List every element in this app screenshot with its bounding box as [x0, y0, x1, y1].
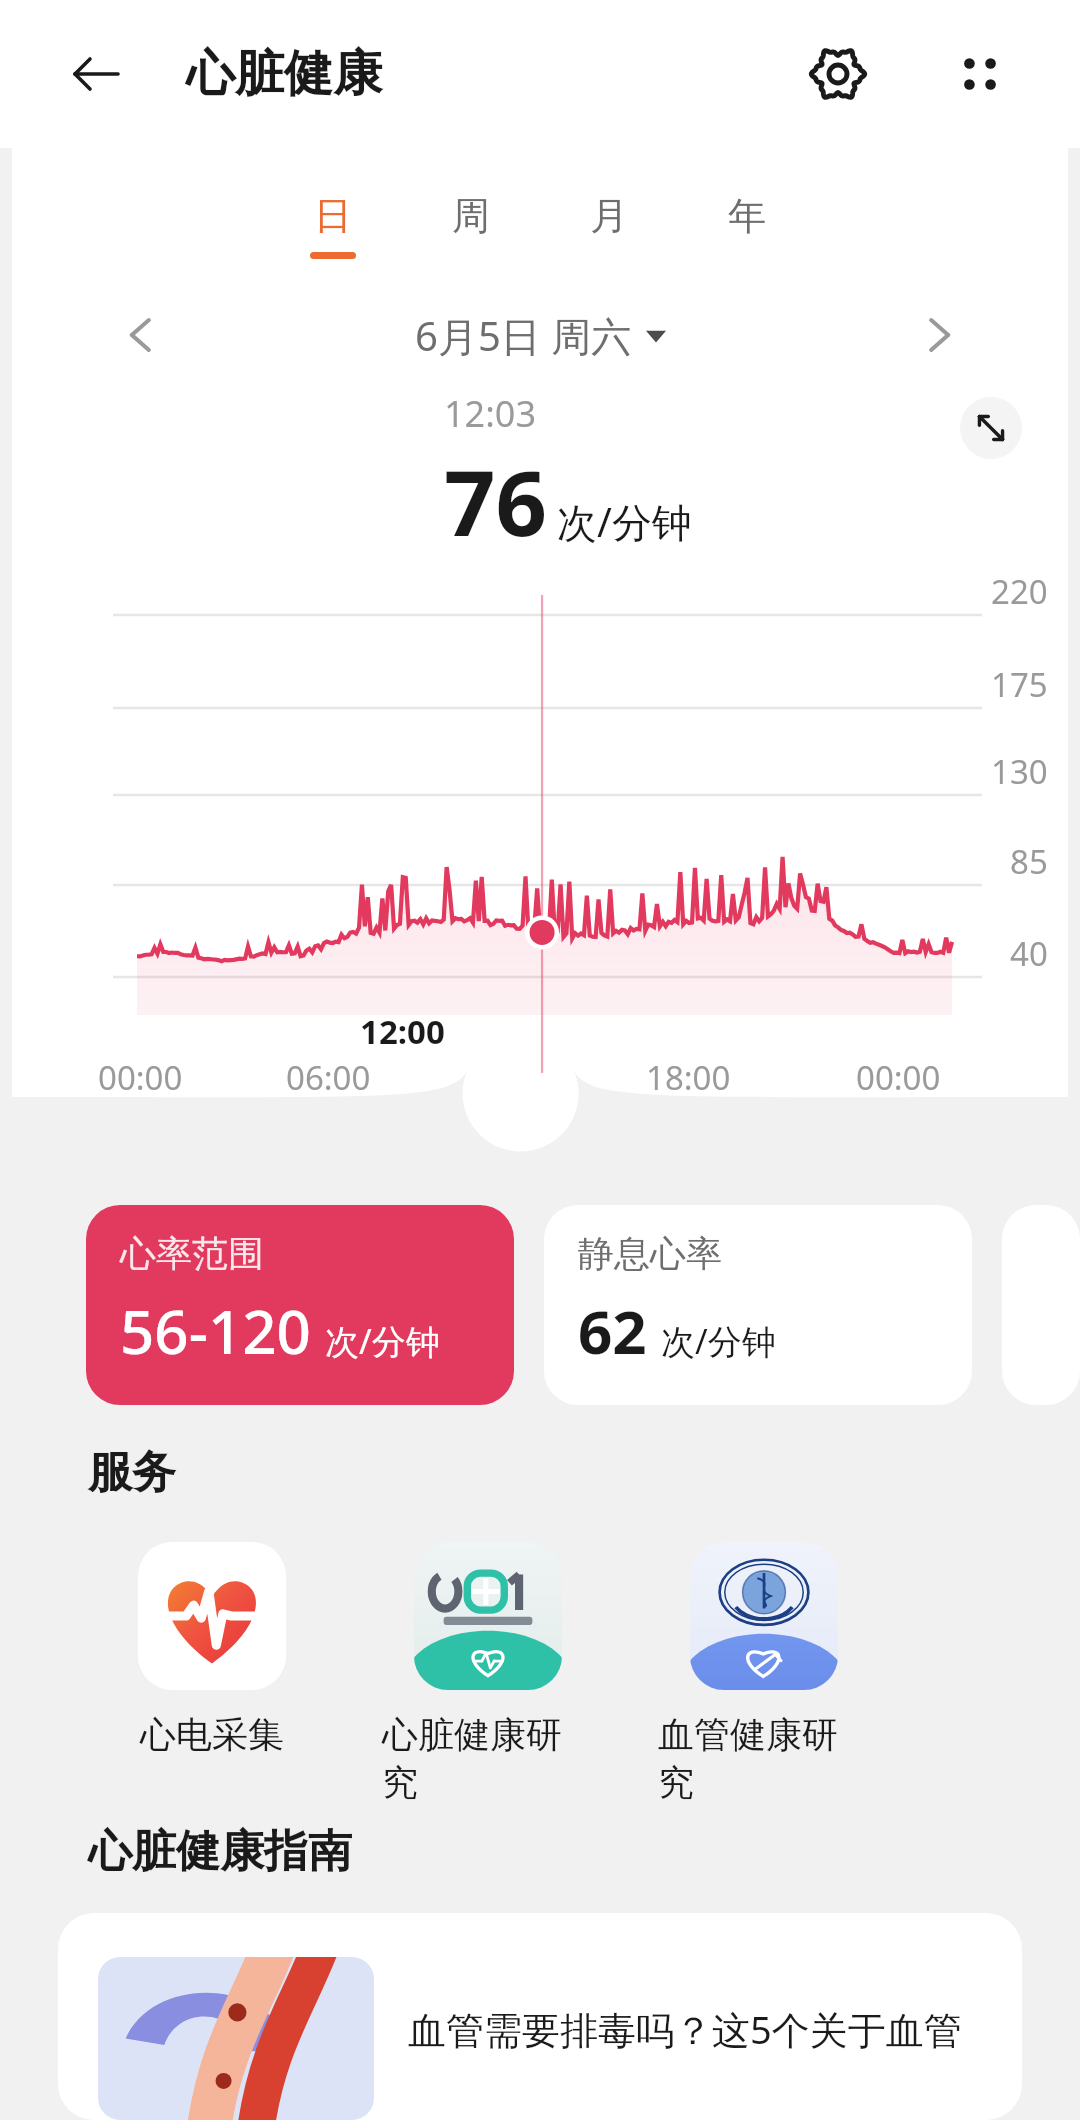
- button[interactable]: 静息心率: [544, 1205, 972, 1405]
- staticText: 220: [991, 569, 1048, 614]
- staticText: 血管健康研究: [658, 1712, 870, 1806]
- button[interactable]: 心率范围: [86, 1205, 514, 1405]
- staticText: 00:00: [856, 1055, 941, 1100]
- staticText: 76: [444, 440, 547, 563]
- staticText: 40: [1010, 931, 1048, 976]
- button[interactable]: 日: [300, 192, 366, 259]
- staticText: 静息心率: [578, 1231, 722, 1276]
- staticText: 心率范围: [120, 1231, 264, 1276]
- button[interactable]: 月: [576, 192, 642, 259]
- button[interactable]: 血管健康研究: [658, 1542, 870, 1806]
- staticText: 次/分钟: [325, 1318, 440, 1364]
- button[interactable]: Next day: [908, 303, 972, 367]
- button[interactable]: 血管需要排毒吗？这5个关于血管: [58, 1913, 1022, 2120]
- staticText: 00:00: [98, 1055, 183, 1100]
- button[interactable]: 心脏健康研究: [382, 1542, 594, 1806]
- staticText: 12:03: [444, 389, 537, 438]
- staticText: 130: [991, 749, 1048, 794]
- button[interactable]: More options: [936, 30, 1024, 118]
- staticText: 心脏健康指南: [88, 1824, 352, 1879]
- staticText: 心电采集: [140, 1712, 284, 1757]
- staticText: 次/分钟: [557, 494, 692, 549]
- staticText: 服务: [88, 1445, 176, 1500]
- button[interactable]: [1002, 1205, 1080, 1405]
- staticText: 85: [1010, 839, 1048, 884]
- button[interactable]: 心电采集: [106, 1542, 318, 1757]
- staticText: 心脏健康: [186, 43, 382, 105]
- staticText: 56-120: [120, 1290, 311, 1372]
- staticText: 心脏健康研究: [382, 1712, 594, 1806]
- button[interactable]: Back: [58, 36, 134, 112]
- button[interactable]: 6月5日 周六: [415, 308, 666, 363]
- staticText: 月: [590, 192, 628, 240]
- staticText: 血管需要排毒吗？这5个关于血管: [408, 2003, 962, 2055]
- staticText: 12:00: [360, 1009, 445, 1054]
- staticText: 18:00: [646, 1055, 731, 1100]
- button[interactable]: 年: [714, 192, 780, 259]
- staticText: 6月5日 周六: [415, 308, 632, 363]
- button[interactable]: 周: [438, 192, 504, 259]
- staticText: 日: [314, 192, 352, 240]
- button[interactable]: Expand chart: [960, 397, 1022, 459]
- staticText: 06:00: [286, 1055, 371, 1100]
- button[interactable]: Settings: [794, 30, 882, 118]
- button[interactable]: Previous day: [108, 303, 172, 367]
- staticText: 次/分钟: [661, 1318, 776, 1364]
- staticText: 年: [728, 192, 766, 240]
- staticText: 62: [578, 1290, 647, 1372]
- staticText: 175: [991, 662, 1048, 707]
- staticText: 周: [452, 192, 490, 240]
